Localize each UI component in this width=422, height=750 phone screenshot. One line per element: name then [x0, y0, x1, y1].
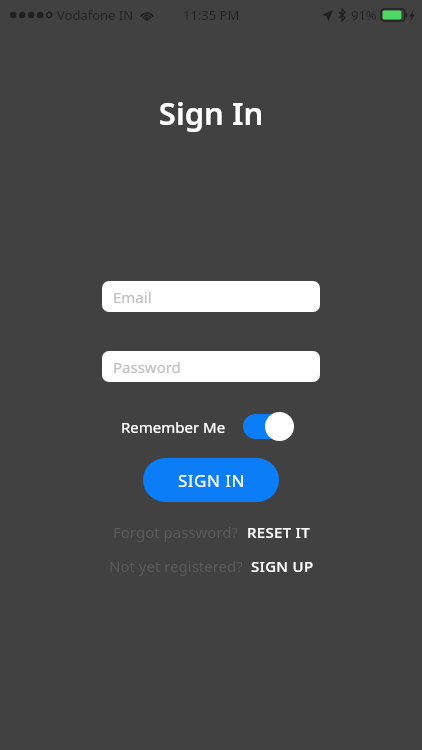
staticText: Email — [113, 287, 152, 307]
button[interactable]: SIGN UP — [251, 554, 314, 578]
staticText: Password — [113, 357, 181, 377]
staticText: Not yet registered? — [109, 556, 243, 576]
staticText: RESET IT — [247, 522, 310, 542]
staticText: Forgot password? — [113, 522, 239, 542]
staticText: SIGN IN — [178, 469, 245, 492]
button[interactable]: Not yet registered? — [109, 554, 243, 578]
button[interactable]: Email — [102, 281, 320, 312]
staticText: 91% — [351, 6, 377, 24]
button[interactable]: RESET IT — [247, 520, 310, 544]
staticText: Remember Me — [121, 417, 226, 437]
button[interactable]: SIGN IN — [143, 458, 279, 502]
staticText: Sign In — [0, 92, 422, 134]
staticText: Vodafone IN — [57, 6, 134, 24]
staticText: 11:35 PM — [183, 6, 240, 24]
button[interactable]: Forgot password? — [113, 520, 239, 544]
button[interactable]: Remember Me toggle, on — [243, 411, 294, 442]
button[interactable]: Password — [102, 351, 320, 382]
staticText: SIGN UP — [251, 556, 314, 576]
